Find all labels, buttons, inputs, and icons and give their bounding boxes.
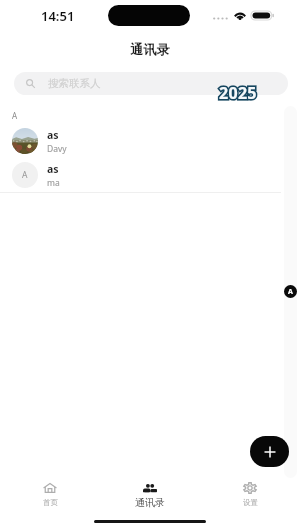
staticText: A bbox=[22, 169, 28, 181]
button[interactable]: 通讯录 bbox=[100, 476, 200, 508]
staticText: 14:51 bbox=[41, 7, 75, 25]
staticText: 首页 bbox=[43, 498, 58, 507]
button[interactable]: as bbox=[0, 124, 300, 158]
staticText: 搜索联系人 bbox=[48, 77, 101, 90]
button[interactable]: 设置 bbox=[200, 476, 300, 508]
staticText: 通讯录 bbox=[135, 496, 165, 508]
staticText: A bbox=[12, 110, 18, 121]
staticText: 通讯录 bbox=[130, 41, 170, 57]
staticText: 设置 bbox=[243, 498, 258, 507]
button[interactable]: 搜索联系人 bbox=[14, 72, 288, 95]
staticText: 2025 bbox=[219, 82, 257, 104]
staticText: A bbox=[288, 287, 293, 297]
button[interactable]: A bbox=[0, 158, 300, 192]
staticText: as bbox=[47, 162, 59, 176]
button[interactable]: 添加联系人 bbox=[250, 436, 289, 467]
button[interactable]: 字母索引 bbox=[284, 106, 297, 478]
button[interactable]: 首页 bbox=[0, 476, 100, 508]
staticText: Davy bbox=[47, 143, 67, 155]
staticText: 2025 bbox=[219, 82, 257, 104]
staticText: as bbox=[47, 128, 59, 142]
staticText: ma bbox=[47, 177, 60, 189]
